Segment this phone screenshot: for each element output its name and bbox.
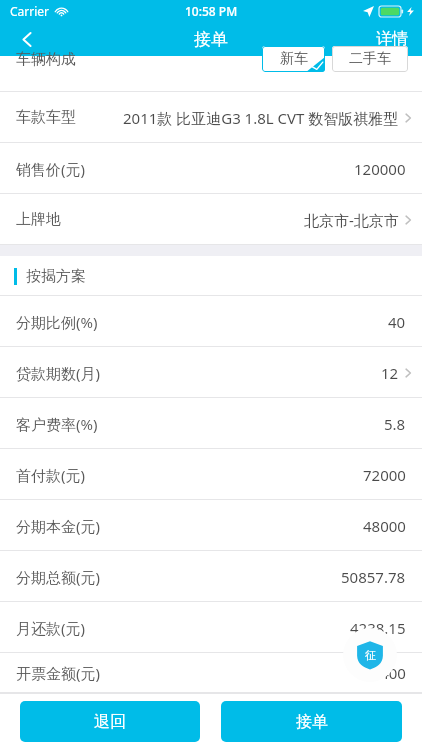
button[interactable]: 销售价(元)	[0, 143, 422, 194]
button[interactable]: 分期比例(%)	[0, 296, 422, 347]
button[interactable]: 车款车型	[0, 92, 422, 143]
staticText: 月还款(元)	[16, 618, 86, 638]
button[interactable]: 详情	[362, 22, 422, 56]
button[interactable]: 返回	[0, 22, 54, 56]
staticText: 120000	[354, 159, 406, 179]
button[interactable]: 首付款(元)	[0, 449, 422, 500]
staticText: 接单	[296, 712, 328, 732]
staticText: 上牌地	[16, 210, 61, 229]
button[interactable]: 征信	[343, 628, 397, 682]
staticText: 开票金额(元)	[16, 663, 101, 683]
button[interactable]: 分期总额(元)	[0, 551, 422, 602]
button[interactable]: 上牌地	[0, 194, 422, 245]
staticText: 分期总额(元)	[16, 567, 101, 587]
staticText: 销售价(元)	[16, 159, 86, 179]
staticText: 车款车型	[16, 108, 76, 127]
staticText: 客户费率(%)	[16, 414, 98, 434]
staticText: 二手车	[349, 50, 391, 68]
button[interactable]: 新车	[262, 46, 325, 72]
staticText: 2011款 比亚迪G3 1.8L CVT 数智版祺雅型	[123, 108, 399, 128]
staticText: 北京市-北京市	[304, 210, 399, 230]
staticText: 61400	[363, 663, 406, 683]
staticText: 4238.15	[350, 618, 406, 638]
button[interactable]: 开票金额(元)	[0, 653, 422, 693]
staticText: 5.8	[384, 414, 406, 434]
staticText: Carrier	[10, 3, 50, 19]
button[interactable]: 车辆构成	[0, 56, 422, 92]
staticText: 详情	[376, 29, 408, 49]
staticText: 新车	[280, 50, 308, 68]
button[interactable]: 贷款期数(月)	[0, 347, 422, 398]
staticText: 分期比例(%)	[16, 312, 98, 332]
staticText: 征	[365, 648, 376, 662]
staticText: 退回	[94, 712, 126, 732]
button[interactable]: 月还款(元)	[0, 602, 422, 653]
button[interactable]: 二手车	[332, 46, 408, 72]
staticText: 首付款(元)	[16, 465, 86, 485]
staticText: 48000	[363, 516, 406, 536]
staticText: 按揭方案	[26, 267, 86, 286]
staticText: 车辆构成	[16, 50, 76, 69]
staticText: 接单	[194, 29, 228, 50]
staticText: 10:58 PM	[185, 3, 238, 19]
staticText: 分期本金(元)	[16, 516, 101, 536]
button[interactable]: 接单	[221, 701, 402, 742]
button[interactable]: 退回	[20, 701, 200, 742]
staticText: 12	[381, 363, 399, 383]
staticText: 50857.78	[341, 567, 406, 587]
staticText: 贷款期数(月)	[16, 363, 101, 383]
staticText: 40	[388, 312, 406, 332]
button[interactable]: 分期本金(元)	[0, 500, 422, 551]
staticText: 72000	[363, 465, 406, 485]
button[interactable]: 客户费率(%)	[0, 398, 422, 449]
